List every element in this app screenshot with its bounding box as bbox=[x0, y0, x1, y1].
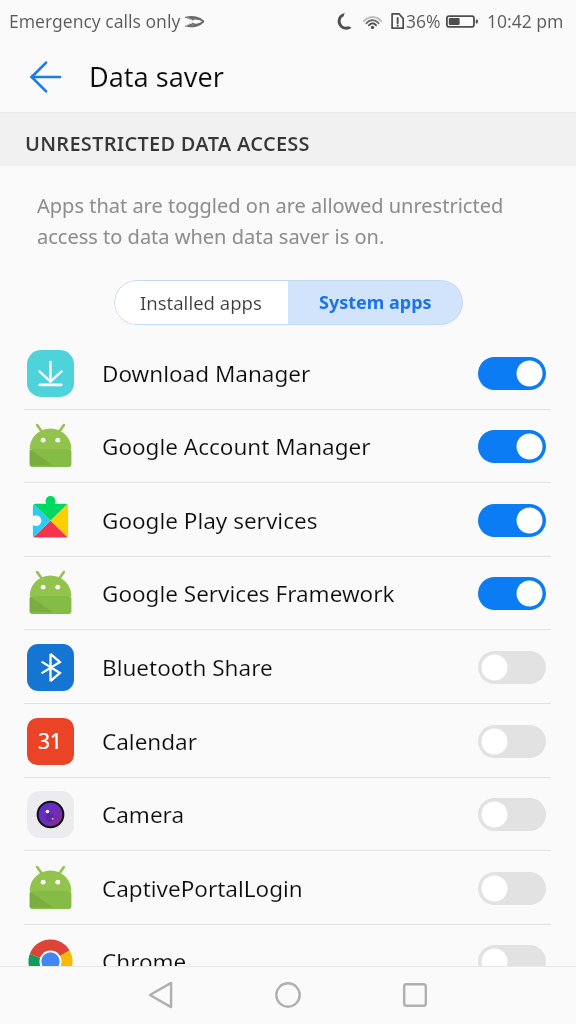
staticText: Chrome bbox=[102, 946, 478, 977]
staticText: Installed apps bbox=[140, 290, 262, 315]
button[interactable]: Recent apps bbox=[387, 967, 443, 1023]
staticText: Google Play services bbox=[102, 505, 478, 536]
button[interactable]: Toggle off bbox=[478, 945, 546, 978]
button[interactable]: Google Account Manager bbox=[0, 409, 576, 483]
staticText: 10:42 pm bbox=[487, 9, 564, 33]
staticText: Emergency calls only bbox=[9, 9, 181, 33]
staticText: Google Services Framework bbox=[102, 578, 478, 609]
staticText: Bluetooth Share bbox=[102, 652, 478, 683]
button[interactable]: Toggle off bbox=[478, 798, 546, 831]
button[interactable]: System apps bbox=[288, 280, 463, 325]
staticText: UNRESTRICTED DATA ACCESS bbox=[25, 130, 310, 157]
button[interactable]: Bluetooth Share bbox=[0, 630, 576, 704]
button[interactable]: Google Play services bbox=[0, 483, 576, 557]
button[interactable]: Download Manager bbox=[0, 336, 576, 410]
button[interactable]: Toggle off bbox=[478, 872, 546, 905]
button[interactable]: 31 bbox=[0, 704, 576, 778]
staticText: Google Account Manager bbox=[102, 431, 478, 462]
button[interactable]: Chrome bbox=[0, 924, 576, 998]
button[interactable]: Toggle on bbox=[478, 504, 546, 537]
button[interactable]: Toggle off bbox=[478, 725, 546, 758]
button[interactable]: Toggle off bbox=[478, 651, 546, 684]
button[interactable]: Installed apps bbox=[114, 280, 288, 325]
staticText: System apps bbox=[319, 290, 432, 315]
button[interactable]: Toggle on bbox=[478, 430, 546, 463]
staticText: 36% bbox=[406, 9, 441, 33]
button[interactable]: CaptivePortalLogin bbox=[0, 851, 576, 925]
button[interactable]: Toggle on bbox=[478, 577, 546, 610]
button[interactable]: Camera bbox=[0, 777, 576, 851]
staticText: Download Manager bbox=[102, 358, 478, 389]
staticText: CaptivePortalLogin bbox=[102, 873, 478, 904]
button[interactable]: Home bbox=[260, 967, 316, 1023]
staticText: Camera bbox=[102, 799, 478, 830]
button[interactable]: Back bbox=[132, 967, 188, 1023]
staticText: 31 bbox=[38, 727, 63, 756]
staticText: Calendar bbox=[102, 726, 478, 757]
button[interactable]: Google Services Framework bbox=[0, 556, 576, 630]
staticText: Apps that are toggled on are allowed unr… bbox=[37, 192, 546, 249]
staticText: Data saver bbox=[89, 58, 224, 95]
button[interactable]: Toggle on bbox=[478, 357, 546, 390]
button[interactable]: Back bbox=[21, 53, 69, 101]
